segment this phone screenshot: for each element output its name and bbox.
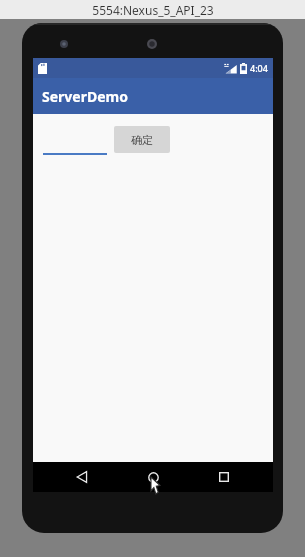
- button[interactable]: Recent apps: [202, 462, 246, 492]
- staticText: 4:04: [250, 62, 268, 74]
- staticText: 5554:Nexus_5_API_23: [92, 2, 214, 18]
- button[interactable]: [43, 137, 107, 155]
- button[interactable]: Home: [131, 462, 175, 492]
- button[interactable]: 确定: [114, 126, 170, 153]
- button[interactable]: Back: [60, 462, 104, 492]
- staticText: ServerDemo: [42, 87, 128, 106]
- staticText: 确定: [131, 133, 153, 147]
